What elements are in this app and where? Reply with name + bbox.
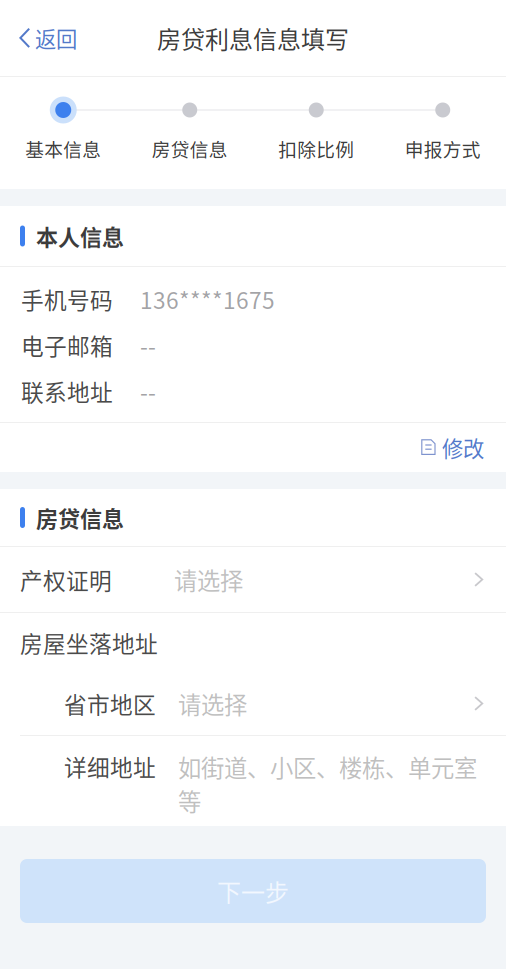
staticText: 详细地址 [64, 750, 156, 783]
staticText: 房屋坐落地址 [20, 626, 158, 659]
staticText: 申报方式 [405, 135, 481, 162]
staticText: 下一步 [217, 874, 289, 908]
staticText: 136****1675 [140, 283, 275, 315]
staticText: 联系地址 [21, 375, 113, 407]
button[interactable]: 下一步 [20, 859, 486, 923]
button[interactable]: 产权证明 [0, 547, 506, 612]
staticText: 返回 [35, 23, 77, 53]
staticText: 房贷信息 [36, 502, 124, 533]
button[interactable]: 返回 [0, 12, 91, 64]
staticText: 请选择 [174, 563, 243, 596]
button[interactable]: 修改 [0, 423, 506, 472]
button[interactable]: 省市地区 [0, 672, 506, 735]
staticText: 本人信息 [36, 220, 124, 252]
staticText: 修改 [442, 432, 484, 463]
staticText: 电子邮箱 [21, 329, 113, 361]
staticText: -- [140, 375, 156, 407]
staticText: 手机号码 [21, 283, 113, 315]
staticText: 产权证明 [20, 563, 112, 596]
staticText: 请选择 [178, 687, 247, 720]
staticText: 省市地区 [64, 687, 156, 720]
staticText: -- [140, 329, 156, 361]
staticText: 基本信息 [25, 135, 101, 162]
staticText: 如街道、小区、楼栋、单元室等 [178, 750, 477, 818]
staticText: 扣除比例 [278, 135, 354, 162]
staticText: 房贷利息信息填写 [157, 21, 349, 55]
staticText: 房贷信息 [152, 135, 228, 162]
